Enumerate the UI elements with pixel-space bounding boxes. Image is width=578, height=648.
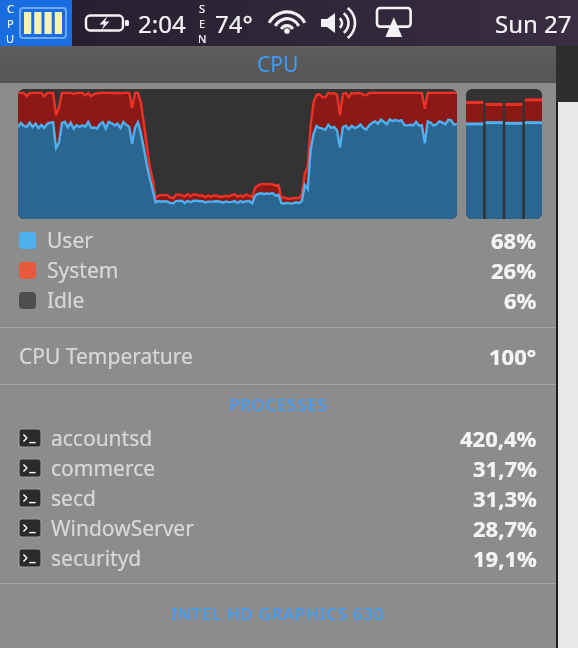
button[interactable]: Per core usage: [466, 89, 542, 219]
staticText: 19,1%: [473, 543, 537, 573]
staticText: 420,4%: [460, 423, 537, 453]
staticText: 74°: [215, 7, 253, 40]
button[interactable]: Idle: [0, 285, 556, 315]
staticText: 26%: [491, 255, 537, 285]
button[interactable]: User: [0, 225, 556, 255]
button[interactable]: AirPlay: [377, 8, 419, 38]
button[interactable]: WindowServer: [0, 513, 556, 543]
staticText: secd: [51, 484, 96, 513]
button[interactable]: Volume: [319, 9, 363, 37]
staticText: System: [47, 256, 119, 285]
staticText: commerce: [51, 454, 156, 483]
staticText: WindowServer: [51, 514, 194, 543]
staticText: 31,3%: [473, 483, 537, 513]
button[interactable]: commerce: [0, 453, 556, 483]
staticText: INTEL HD GRAPHICS 630: [171, 602, 385, 625]
staticText: PROCESSES: [229, 393, 328, 416]
staticText: 31,7%: [473, 453, 537, 483]
button[interactable]: CPU history graph: [18, 89, 457, 219]
button[interactable]: CPU Temperature: [0, 328, 556, 384]
staticText: P: [7, 16, 14, 31]
staticText: User: [47, 226, 93, 255]
button[interactable]: CPU monitor menu: [6, 0, 66, 46]
button[interactable]: Wi-Fi: [267, 9, 307, 37]
staticText: 28,7%: [473, 513, 537, 543]
button[interactable]: System: [0, 255, 556, 285]
staticText: accountsd: [51, 424, 153, 453]
staticText: U: [6, 31, 15, 46]
button[interactable]: secd: [0, 483, 556, 513]
staticText: Idle: [47, 286, 85, 315]
button[interactable]: INTEL HD GRAPHICS 630: [0, 584, 556, 624]
staticText: CPU Temperature: [19, 342, 193, 371]
staticText: C: [7, 1, 14, 16]
staticText: 68%: [491, 225, 537, 255]
staticText: 6%: [504, 285, 537, 315]
button[interactable]: Battery charging: [86, 11, 130, 35]
staticText: securityd: [51, 544, 142, 573]
button[interactable]: CPU: [0, 46, 556, 83]
staticText: E: [199, 16, 206, 31]
staticText: 100°: [489, 341, 537, 371]
staticText: Sun 27: [495, 7, 572, 40]
staticText: CPU: [257, 50, 299, 79]
button[interactable]: accountsd: [0, 423, 556, 453]
staticText: 2:04: [138, 7, 186, 40]
button[interactable]: securityd: [0, 543, 556, 573]
staticText: N: [198, 31, 207, 46]
staticText: S: [199, 1, 206, 16]
